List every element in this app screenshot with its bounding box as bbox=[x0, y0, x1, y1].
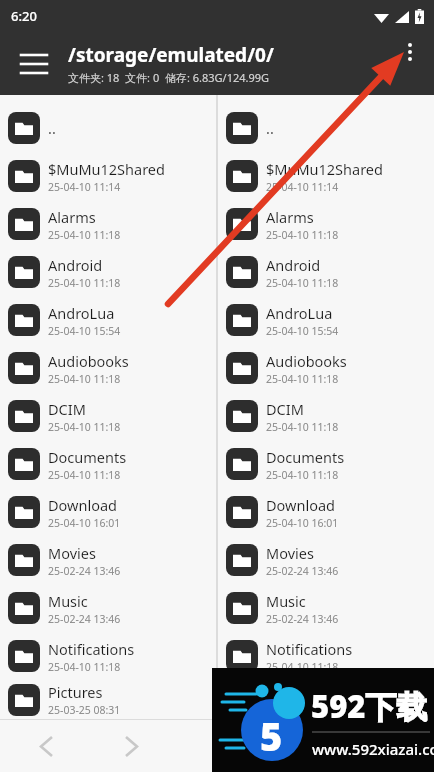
staticText: AndroLua bbox=[48, 303, 115, 323]
staticText: Alarms bbox=[266, 207, 314, 227]
staticText: Audiobooks bbox=[266, 351, 347, 371]
button[interactable]: Music bbox=[0, 584, 216, 632]
staticText: 25-04-10 11:18 bbox=[266, 228, 339, 242]
button[interactable]: Android bbox=[218, 248, 434, 296]
staticText: 25-02-24 13:46 bbox=[266, 612, 339, 626]
button[interactable]: AndroLua bbox=[0, 296, 216, 344]
staticText: 25-03-25 08:31 bbox=[266, 703, 339, 717]
staticText: 25-04-10 11:18 bbox=[266, 276, 339, 290]
staticText: Download bbox=[266, 495, 335, 515]
button[interactable]: Alarms bbox=[0, 200, 216, 248]
staticText: 25-04-10 15:54 bbox=[48, 324, 121, 338]
staticText: /storage/emulated/0/ bbox=[68, 42, 274, 68]
staticText: 25-04-10 11:18 bbox=[266, 660, 339, 674]
button[interactable]: Menu bbox=[12, 42, 56, 86]
staticText: Pictures bbox=[48, 682, 103, 702]
button[interactable]: Pictures bbox=[0, 680, 216, 719]
staticText: 25-04-10 11:18 bbox=[48, 660, 121, 674]
staticText: Pictures bbox=[266, 682, 321, 702]
staticText: 25-02-24 13:46 bbox=[48, 612, 121, 626]
staticText: Android bbox=[48, 255, 103, 275]
staticText: 25-02-24 13:46 bbox=[266, 564, 339, 578]
staticText: DCIM bbox=[48, 399, 86, 419]
staticText: 592下载 bbox=[311, 685, 428, 727]
staticText: 25-04-10 11:18 bbox=[48, 372, 121, 386]
staticText: Documents bbox=[266, 447, 345, 467]
staticText: 25-04-10 11:18 bbox=[48, 420, 121, 434]
button[interactable]: Download bbox=[218, 488, 434, 536]
staticText: 25-04-10 11:18 bbox=[48, 276, 121, 290]
staticText: Android bbox=[266, 255, 321, 275]
staticText: Audiobooks bbox=[48, 351, 129, 371]
button[interactable]: Audiobooks bbox=[218, 344, 434, 392]
staticText: 5 bbox=[260, 710, 283, 762]
staticText: Movies bbox=[48, 543, 96, 563]
staticText: 6:20 bbox=[11, 7, 37, 25]
button[interactable]: Documents bbox=[218, 440, 434, 488]
button[interactable]: Documents bbox=[0, 440, 216, 488]
staticText: 25-04-10 15:54 bbox=[266, 324, 339, 338]
staticText: Download bbox=[48, 495, 117, 515]
staticText: 25-04-10 11:18 bbox=[266, 420, 339, 434]
button[interactable]: Back bbox=[28, 728, 64, 764]
staticText: AndroLua bbox=[266, 303, 333, 323]
button[interactable]: More options bbox=[392, 34, 428, 70]
staticText: $MuMu12Shared bbox=[266, 159, 383, 179]
staticText: 25-03-25 08:31 bbox=[48, 703, 121, 717]
staticText: 25-04-10 11:14 bbox=[266, 180, 339, 194]
button[interactable]: Audiobooks bbox=[0, 344, 216, 392]
staticText: 文件夹: 18 文件: 0 储存: 6.83G/124.99G bbox=[68, 70, 270, 85]
button[interactable]: .. bbox=[218, 104, 434, 152]
button[interactable]: Download bbox=[0, 488, 216, 536]
button[interactable]: Pictures bbox=[218, 680, 434, 719]
staticText: Music bbox=[266, 591, 306, 611]
button[interactable]: DCIM bbox=[0, 392, 216, 440]
staticText: Notifications bbox=[48, 639, 135, 659]
button[interactable]: AndroLua bbox=[218, 296, 434, 344]
button[interactable]: .. bbox=[0, 104, 216, 152]
staticText: 25-04-10 11:18 bbox=[48, 468, 121, 482]
button[interactable]: Movies bbox=[0, 536, 216, 584]
button[interactable]: DCIM bbox=[218, 392, 434, 440]
staticText: www.592xiazai.com bbox=[312, 739, 434, 759]
staticText: Alarms bbox=[48, 207, 96, 227]
button[interactable]: $MuMu12Shared bbox=[0, 152, 216, 200]
staticText: .. bbox=[266, 118, 274, 138]
button[interactable]: Movies bbox=[218, 536, 434, 584]
staticText: 25-04-10 16:01 bbox=[266, 516, 339, 530]
staticText: DCIM bbox=[266, 399, 304, 419]
button[interactable]: Android bbox=[0, 248, 216, 296]
staticText: 25-02-24 13:46 bbox=[48, 564, 121, 578]
staticText: Movies bbox=[266, 543, 314, 563]
staticText: Notifications bbox=[266, 639, 353, 659]
button[interactable]: Music bbox=[218, 584, 434, 632]
staticText: 25-04-10 11:18 bbox=[48, 228, 121, 242]
button[interactable]: Alarms bbox=[218, 200, 434, 248]
staticText: 25-04-10 11:18 bbox=[266, 372, 339, 386]
staticText: 25-04-10 11:18 bbox=[266, 468, 339, 482]
staticText: .. bbox=[48, 118, 56, 138]
staticText: 25-04-10 11:14 bbox=[48, 180, 121, 194]
button[interactable]: Forward bbox=[113, 728, 149, 764]
button[interactable]: Notifications bbox=[218, 632, 434, 680]
staticText: Music bbox=[48, 591, 88, 611]
button[interactable]: Notifications bbox=[0, 632, 216, 680]
staticText: 25-04-10 16:01 bbox=[48, 516, 121, 530]
button[interactable]: $MuMu12Shared bbox=[218, 152, 434, 200]
staticText: $MuMu12Shared bbox=[48, 159, 165, 179]
staticText: Documents bbox=[48, 447, 127, 467]
